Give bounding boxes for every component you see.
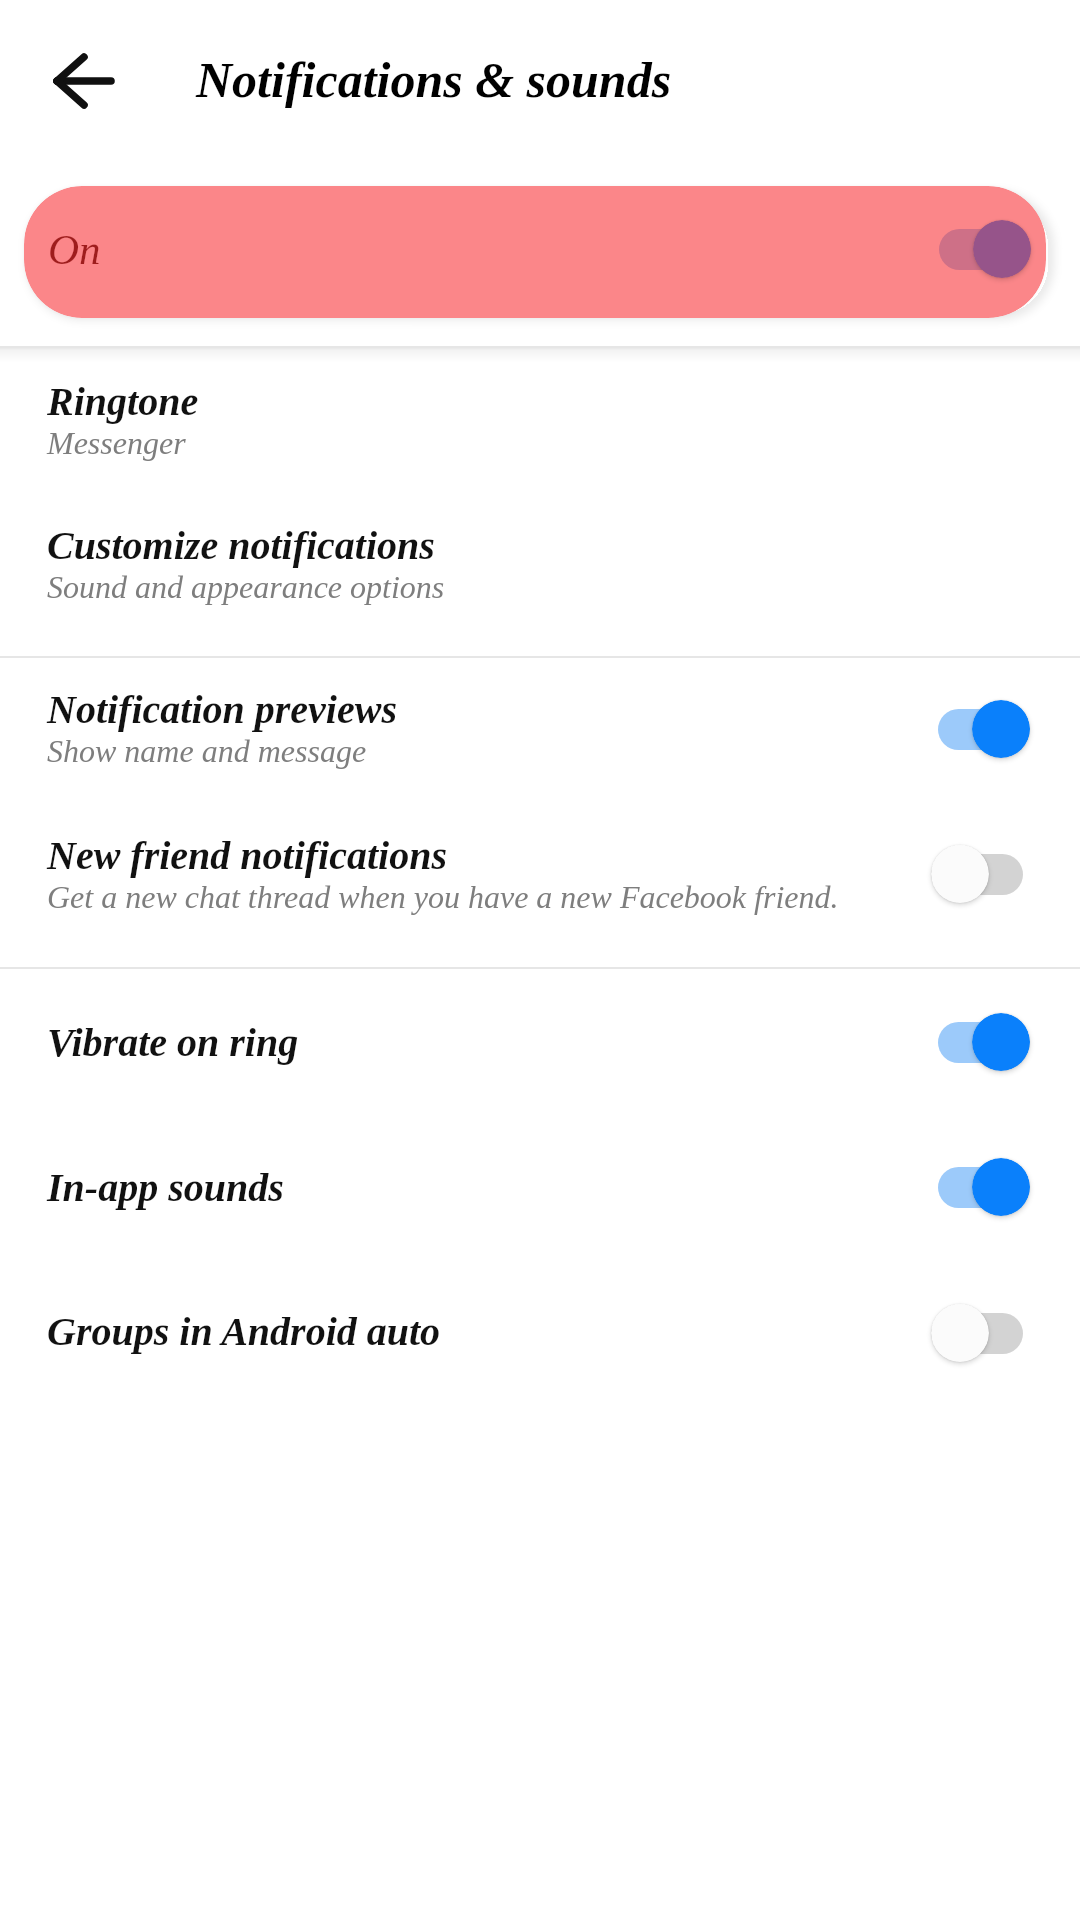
staticText: Vibrate on ring [47,1020,299,1064]
button[interactable]: Back [34,36,124,126]
staticText: Get a new chat thread when you have a ne… [47,879,839,914]
button[interactable]: New friend notifications [917,832,1037,916]
button[interactable]: In-app sounds [0,1114,1080,1259]
button[interactable]: On [24,186,1046,318]
staticText: Customize notifications [47,523,435,567]
button[interactable]: Notification previews [924,687,1044,771]
button[interactable]: Vibrate on ring [924,1000,1044,1084]
button[interactable]: Ringtone [0,348,1080,500]
staticText: In-app sounds [47,1165,284,1209]
button[interactable]: Groups in Android auto [0,1259,1080,1404]
button[interactable]: In-app sounds [924,1145,1044,1229]
button[interactable]: Notifications on [925,207,1045,291]
staticText: New friend notifications [47,833,448,877]
staticText: Notification previews [47,687,397,731]
button[interactable]: Groups in Android auto [917,1291,1037,1375]
staticText: On [48,226,101,274]
staticText: Groups in Android auto [47,1309,441,1353]
staticText: Ringtone [47,379,199,423]
button[interactable]: Customize notifications [0,500,1080,656]
staticText: Messenger [47,425,186,460]
staticText: Notifications & sounds [196,52,672,107]
button[interactable]: Notification previews [0,658,1080,810]
button[interactable]: Vibrate on ring [0,969,1080,1114]
staticText: Sound and appearance options [47,569,445,604]
staticText: Show name and message [47,733,367,768]
button[interactable]: New friend notifications [0,810,1080,967]
